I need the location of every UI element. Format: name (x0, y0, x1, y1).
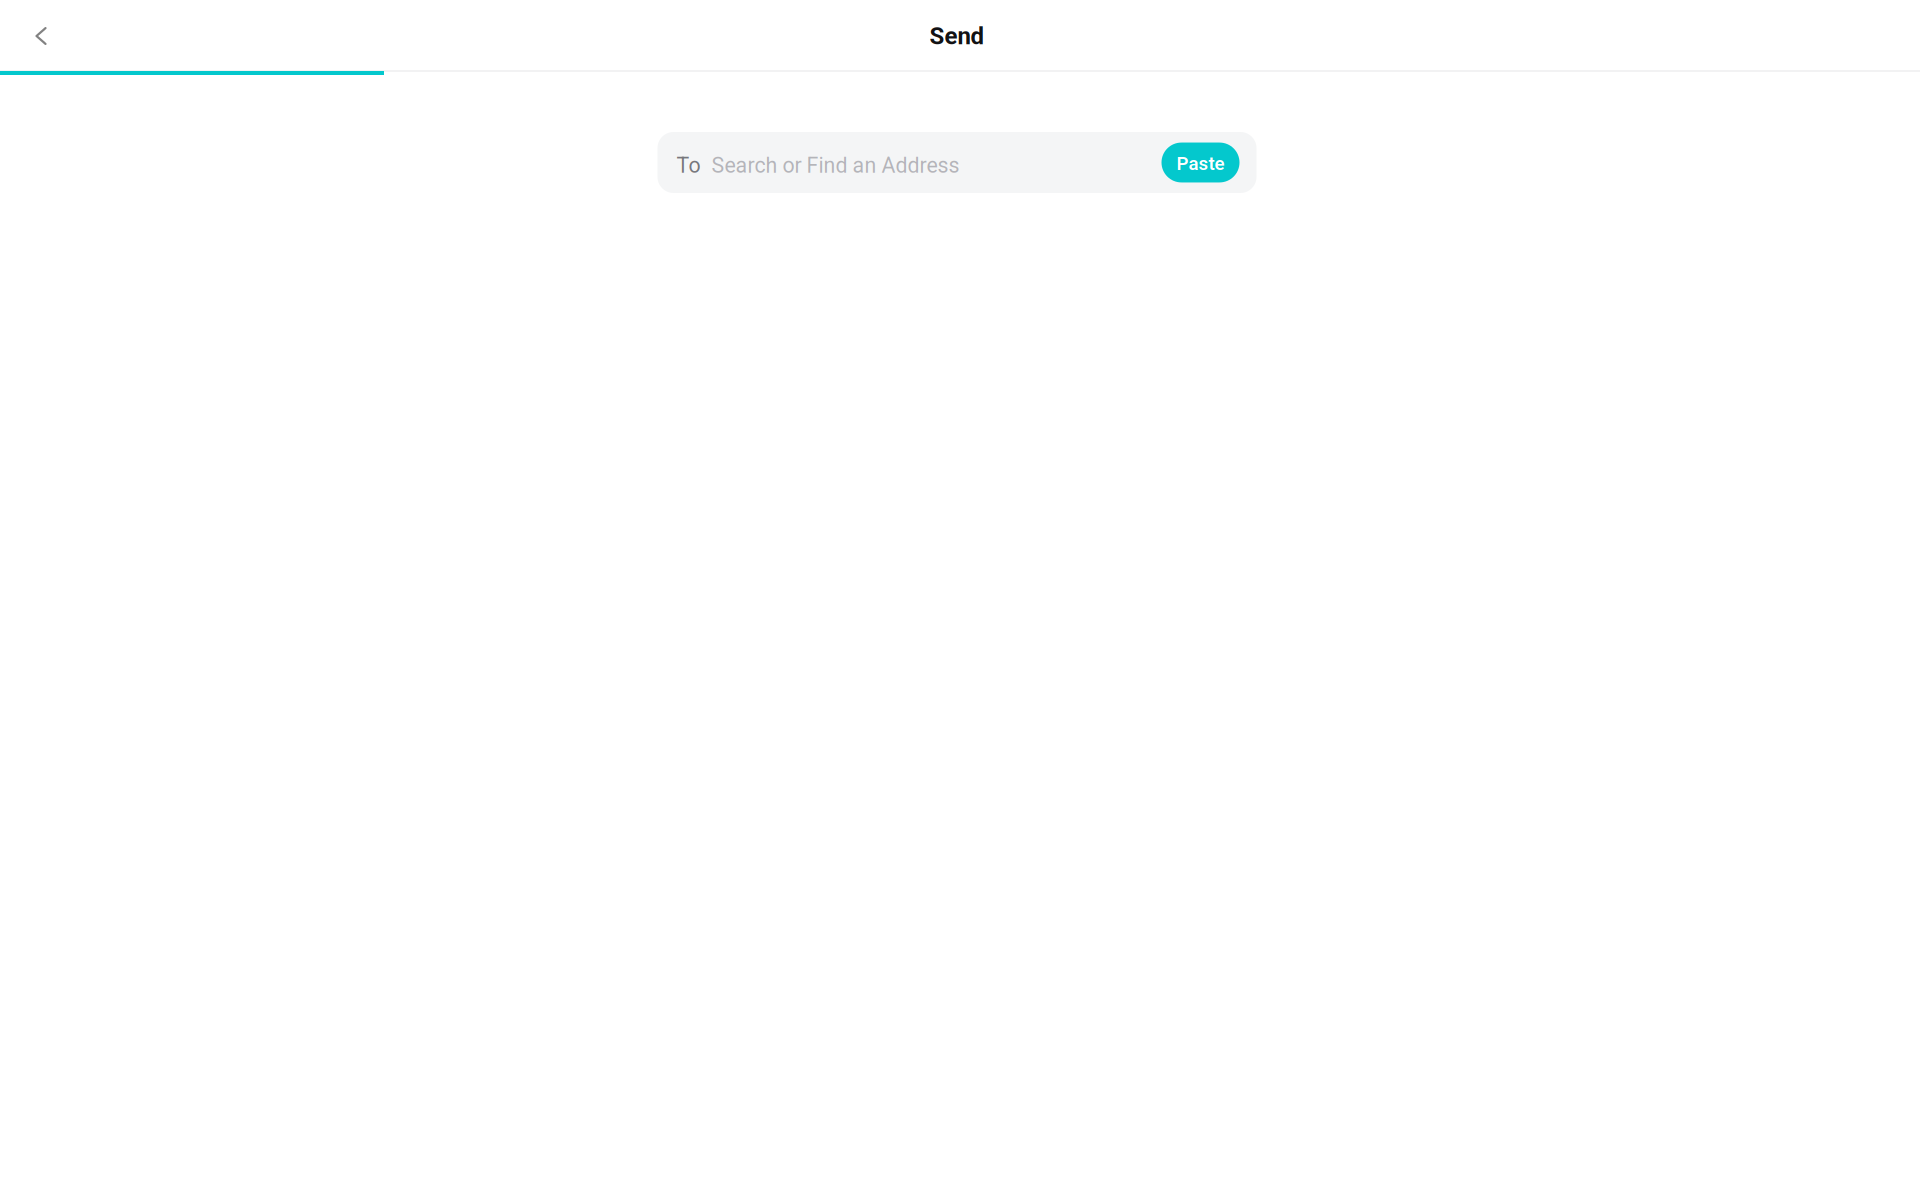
staticText: To (676, 153, 700, 178)
button[interactable]: Paste (1161, 143, 1239, 182)
staticText: Search or Find an Address (711, 153, 959, 178)
staticText: Paste (1176, 153, 1224, 174)
button[interactable]: Back (19, 14, 63, 58)
staticText: Send (929, 22, 984, 50)
